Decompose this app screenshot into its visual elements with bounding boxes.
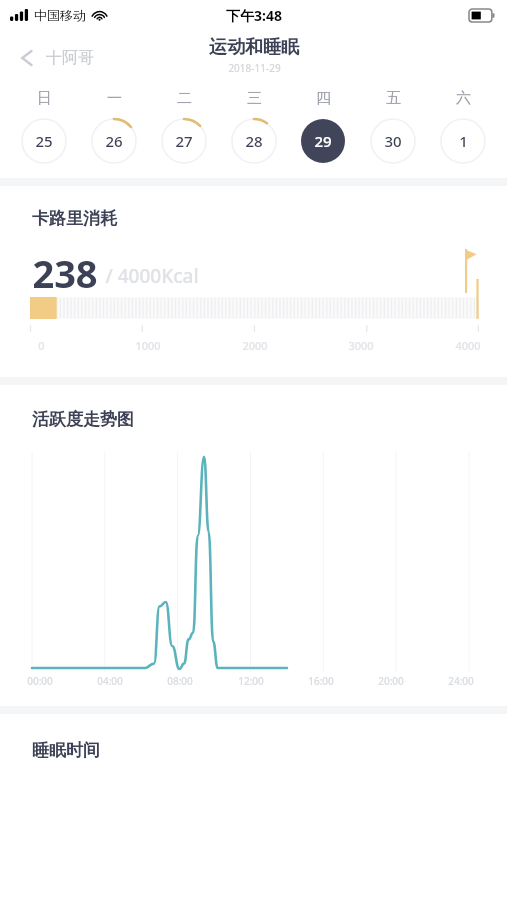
staticText: 睡眠时间 — [32, 740, 100, 761]
staticText: 十阿哥 — [46, 48, 94, 68]
staticText: 运动和睡眠 — [209, 36, 299, 59]
button[interactable]: 28 — [228, 118, 280, 164]
staticText: 六 — [456, 89, 471, 108]
staticText: 2000 — [242, 338, 268, 353]
button[interactable]: 30 — [367, 118, 419, 164]
staticText: 活跃度走势图 — [32, 409, 134, 430]
button[interactable]: 27 — [158, 118, 210, 164]
staticText: 0 — [38, 338, 45, 353]
staticText: 1000 — [135, 338, 161, 353]
button[interactable]: 26 — [88, 118, 140, 164]
staticText: 238 — [32, 247, 98, 293]
staticText: 二 — [177, 89, 192, 108]
staticText: 08:00 — [167, 674, 193, 688]
staticText: 12:00 — [238, 674, 264, 688]
staticText: 00:00 — [27, 674, 53, 688]
button[interactable]: Back — [14, 41, 100, 75]
staticText: 四 — [316, 89, 331, 108]
button[interactable]: 25 — [18, 118, 70, 164]
staticText: 3000 — [348, 338, 374, 353]
staticText: 16:00 — [308, 674, 334, 688]
staticText: 04:00 — [97, 674, 123, 688]
staticText: 30 — [384, 131, 402, 151]
staticText: 卡路里消耗 — [32, 208, 117, 229]
staticText: 24:00 — [448, 674, 474, 688]
staticText: 29 — [314, 131, 332, 151]
staticText: 26 — [105, 131, 123, 151]
staticText: 五 — [386, 89, 401, 108]
staticText: 28 — [245, 131, 263, 151]
staticText: 日 — [37, 89, 52, 108]
staticText: 25 — [35, 131, 53, 151]
staticText: 三 — [247, 89, 262, 108]
staticText: 4000 — [455, 338, 481, 353]
staticText: 27 — [175, 131, 193, 151]
staticText: 2018-11-29 — [228, 61, 281, 75]
staticText: / 4000Kcal — [105, 263, 199, 289]
button[interactable]: 29 — [297, 118, 349, 164]
staticText: 一 — [107, 89, 122, 108]
staticText: 中国移动 — [34, 7, 86, 23]
staticText: 下午3:48 — [226, 6, 282, 25]
staticText: 1 — [459, 131, 468, 151]
button[interactable]: 1 — [437, 118, 489, 164]
other: Back — [20, 47, 34, 69]
staticText: 20:00 — [378, 674, 404, 688]
